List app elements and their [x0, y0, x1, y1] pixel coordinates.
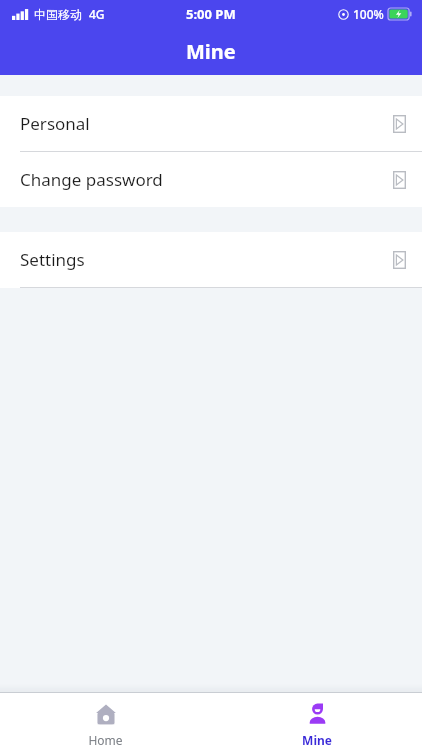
staticText: 100%	[353, 6, 384, 22]
staticText: Home	[88, 732, 123, 748]
button[interactable]: Mine	[211, 696, 422, 748]
other: Open	[393, 115, 406, 133]
button[interactable]: Settings	[0, 232, 422, 288]
other: Open	[393, 251, 406, 269]
staticText: Change password	[20, 168, 163, 191]
other: Open	[393, 171, 406, 189]
other: Home	[93, 702, 119, 728]
staticText: Mine	[302, 732, 332, 748]
staticText: Settings	[20, 248, 85, 271]
other: Mine	[304, 702, 330, 728]
staticText: 5:00 PM	[186, 5, 236, 23]
button[interactable]: Personal	[0, 96, 422, 152]
staticText: 4G	[89, 6, 105, 22]
staticText: Mine	[186, 38, 236, 65]
button[interactable]: Home	[0, 696, 211, 748]
staticText: 中国移动	[34, 7, 82, 22]
button[interactable]: Change password	[0, 152, 422, 207]
staticText: Personal	[20, 112, 90, 135]
